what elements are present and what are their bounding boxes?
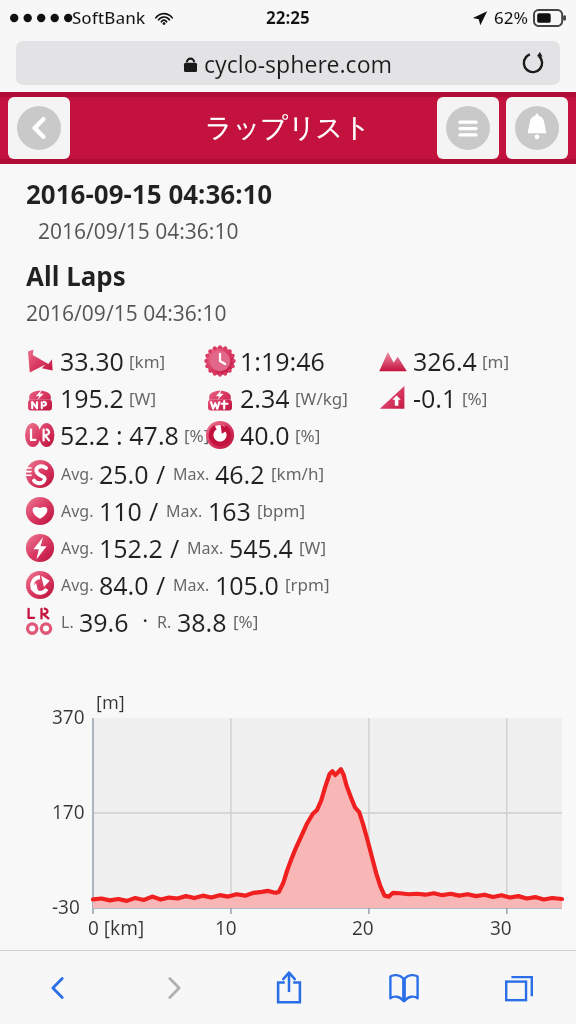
staticText: / (156, 457, 166, 491)
staticText: 62% (494, 6, 528, 29)
staticText: 2016/09/15 04:36:10 (38, 217, 239, 246)
button[interactable]: Avg. (25, 566, 576, 603)
staticText: cyclo-sphere.com (204, 48, 393, 79)
staticText: [%] (233, 610, 259, 633)
staticText: [W/kg] (295, 387, 348, 410)
staticText: 170 (52, 799, 85, 825)
button[interactable]: Forward (116, 951, 231, 1024)
staticText: 195.2 (60, 381, 124, 415)
button[interactable]: Menu (437, 97, 499, 159)
staticText: 105.0 (215, 568, 279, 602)
staticText: Avg. (61, 463, 94, 485)
staticText: -30 (52, 894, 80, 920)
button[interactable]: Share (231, 951, 346, 1024)
staticText: 22:25 (266, 6, 310, 29)
staticText: Avg. (61, 574, 94, 596)
button[interactable]: cyclo-sphere.com (16, 41, 560, 85)
staticText: R. (157, 611, 172, 633)
staticText: Max. (173, 574, 210, 596)
staticText: 545.4 (229, 531, 293, 565)
button[interactable]: Avg. (25, 529, 576, 566)
staticText: All Laps (26, 258, 126, 293)
staticText: [bpm] (257, 499, 305, 522)
button[interactable]: Avg. (25, 492, 576, 529)
staticText: Avg. (61, 537, 94, 559)
staticText: 40.0 (240, 418, 290, 452)
button[interactable]: 326.4 (378, 344, 510, 378)
staticText: / (170, 531, 180, 565)
staticText: 152.2 (99, 531, 163, 565)
button[interactable]: Tabs (461, 951, 576, 1024)
staticText: / (156, 568, 166, 602)
button[interactable]: 2.34 (205, 381, 348, 415)
button[interactable]: 40.0 (205, 418, 321, 452)
staticText: 1:19:46 (240, 344, 325, 378)
staticText: Avg. (61, 500, 94, 522)
staticText: -0.1 (413, 381, 457, 415)
staticText: 39.6 (79, 605, 129, 639)
staticText: 163 (208, 494, 251, 528)
staticText: ラップリスト (205, 111, 371, 145)
staticText: 110 (99, 494, 142, 528)
button[interactable]: Back (8, 97, 70, 159)
staticText: [m] (96, 690, 125, 715)
staticText: 2016/09/15 04:36:10 (26, 299, 227, 328)
staticText: 370 (52, 704, 85, 730)
staticText: ・ (136, 610, 154, 633)
staticText: [km] (129, 350, 166, 373)
button[interactable]: 33.30 (25, 344, 166, 378)
button[interactable]: -0.1 (378, 381, 488, 415)
staticText: L. (61, 611, 74, 633)
button[interactable]: Bookmarks (346, 951, 461, 1024)
staticText: [W] (299, 536, 326, 559)
staticText: [W] (129, 387, 156, 410)
staticText: [%] (184, 424, 210, 447)
staticText: SoftBank (72, 6, 146, 29)
staticText: Max. (187, 537, 224, 559)
staticText: 30 (490, 915, 512, 940)
button[interactable]: L. (25, 603, 576, 640)
staticText: / (149, 494, 159, 528)
button[interactable]: Reload (516, 46, 550, 80)
staticText: 20 (352, 915, 374, 940)
staticText: Max. (173, 463, 210, 485)
staticText: 2016-09-15 04:36:10 (26, 176, 273, 211)
staticText: [rpm] (285, 573, 330, 596)
button[interactable]: Avg. (25, 455, 576, 492)
staticText: 33.30 (60, 344, 124, 378)
staticText: 46.2 (215, 457, 265, 491)
staticText: [km/h] (271, 462, 324, 485)
button[interactable]: Back (0, 951, 116, 1024)
staticText: 326.4 (413, 344, 477, 378)
staticText: Max. (166, 500, 203, 522)
staticText: [m] (482, 350, 510, 373)
staticText: 25.0 (99, 457, 149, 491)
staticText: 10 (215, 915, 237, 940)
staticText: 84.0 (99, 568, 149, 602)
staticText: [%] (295, 424, 321, 447)
staticText: 0 [km] (88, 915, 145, 940)
staticText: [%] (462, 387, 488, 410)
button[interactable]: Notifications (506, 97, 568, 159)
button[interactable]: 52.2 : 47.8 (25, 418, 210, 452)
staticText: 52.2 : 47.8 (60, 418, 179, 452)
staticText: 2.34 (240, 381, 290, 415)
staticText: 38.8 (177, 605, 227, 639)
button[interactable]: 195.2 (25, 381, 156, 415)
button[interactable]: 1:19:46 (205, 344, 325, 378)
